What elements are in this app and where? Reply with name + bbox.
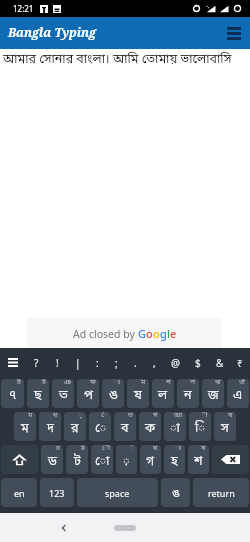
button[interactable]: ,	[145, 348, 164, 377]
staticText: খ	[153, 412, 158, 420]
staticText: এ	[233, 388, 243, 405]
button[interactable]: ঠ	[66, 445, 88, 474]
button[interactable]: :	[88, 348, 107, 377]
staticText: ল	[158, 388, 168, 405]
staticText: ঝ	[215, 379, 221, 387]
staticText: ন	[184, 388, 192, 405]
button[interactable]: আ	[164, 412, 186, 441]
staticText: ক	[145, 421, 156, 438]
button[interactable]: Back	[55, 519, 73, 537]
button[interactable]: @	[164, 348, 187, 377]
button[interactable]: |	[68, 348, 88, 377]
button[interactable]: .	[126, 348, 145, 377]
staticText: ঃ	[114, 379, 121, 387]
staticText: ো	[95, 454, 110, 471]
staticText: জ	[208, 388, 219, 405]
staticText: র	[71, 421, 79, 438]
button[interactable]: ঞ	[52, 379, 74, 408]
button[interactable]: শ	[152, 379, 174, 408]
button[interactable]: ₹	[230, 348, 250, 377]
staticText: য	[134, 388, 142, 405]
staticText: space	[105, 487, 130, 499]
staticText: ঢ	[56, 445, 60, 453]
staticText: ?	[34, 356, 39, 370]
button[interactable]: Shift	[1, 445, 38, 474]
button[interactable]: ট	[27, 379, 49, 408]
button[interactable]: space	[77, 478, 158, 507]
button[interactable]: Backspace	[212, 445, 249, 474]
staticText: ঘ	[153, 445, 158, 453]
staticText: আ	[174, 412, 183, 420]
button[interactable]: return	[193, 478, 249, 507]
staticText: ট	[42, 379, 46, 387]
button[interactable]: ৈ	[89, 412, 111, 441]
staticText: ৌ	[102, 445, 110, 453]
button[interactable]: ষ	[214, 412, 236, 441]
staticText: :	[96, 356, 99, 370]
button[interactable]: 123	[40, 478, 74, 507]
staticText: শ	[166, 379, 171, 387]
button[interactable]: ফ	[77, 379, 99, 408]
staticText: ত	[59, 388, 68, 405]
button[interactable]: খ	[139, 412, 161, 441]
staticText: ষ	[228, 412, 233, 420]
staticText: ী	[202, 412, 208, 420]
staticText: গ	[146, 454, 155, 471]
button[interactable]: ম	[14, 412, 36, 441]
button[interactable]: ভ	[114, 412, 136, 441]
staticText: ,	[153, 356, 156, 370]
staticText: ;	[115, 356, 118, 370]
staticText: ৈ	[101, 412, 108, 420]
button[interactable]: ষ	[188, 445, 209, 474]
staticText: o	[153, 326, 160, 341]
staticText: ম	[28, 412, 33, 420]
staticText: o	[146, 326, 153, 341]
button[interactable]: প	[177, 379, 199, 408]
button[interactable]: ঘ	[140, 445, 161, 474]
button[interactable]: !	[47, 348, 68, 377]
staticText: @	[171, 356, 180, 370]
button[interactable]: Keyboard settings	[0, 348, 25, 377]
staticText: G	[138, 326, 146, 341]
button[interactable]: $	[187, 348, 209, 377]
button[interactable]: &	[209, 348, 230, 377]
button[interactable]: ঢ	[41, 445, 63, 474]
staticText: |	[75, 356, 81, 370]
button[interactable]: ী	[189, 412, 211, 441]
staticText: $	[195, 356, 201, 370]
staticText: ম	[141, 379, 146, 387]
staticText: ধ	[53, 412, 58, 420]
staticText: হ	[171, 454, 178, 471]
button[interactable]: ?	[25, 348, 47, 377]
staticText: ়	[123, 454, 130, 471]
button[interactable]: ৌ	[91, 445, 113, 474]
button[interactable]: Home	[114, 525, 136, 531]
staticText: 123	[49, 487, 65, 499]
staticText: া	[170, 421, 180, 438]
button[interactable]: ঃ	[164, 445, 185, 474]
button[interactable]: ধ	[39, 412, 61, 441]
button[interactable]: ঝ	[202, 379, 224, 408]
button[interactable]: ম	[127, 379, 149, 408]
button[interactable]: ঙ	[161, 478, 190, 507]
staticText: ঃ	[175, 445, 182, 453]
staticText: &	[216, 356, 224, 370]
staticText: !	[56, 356, 59, 370]
staticText: ি	[195, 421, 205, 438]
button[interactable]: en	[1, 478, 37, 507]
button[interactable]: ঔ	[227, 379, 249, 408]
staticText: ছ	[34, 388, 42, 405]
staticText: আমার সোনার বাংলা। আমি তোমায় ভালোবাসি	[3, 52, 232, 69]
button[interactable]: ঁ	[116, 445, 137, 474]
staticText: ড	[48, 454, 57, 471]
button[interactable]: ৃ	[64, 412, 86, 441]
button[interactable]: Menu	[218, 17, 250, 49]
button[interactable]: ঃ	[102, 379, 124, 408]
button[interactable]: ;	[107, 348, 126, 377]
staticText: Bangla Typing	[8, 24, 97, 40]
staticText: ভ	[128, 412, 133, 420]
staticText: শ	[194, 454, 203, 471]
staticText: প	[190, 379, 196, 387]
button[interactable]: ট	[1, 379, 24, 408]
staticText: l	[167, 326, 170, 341]
